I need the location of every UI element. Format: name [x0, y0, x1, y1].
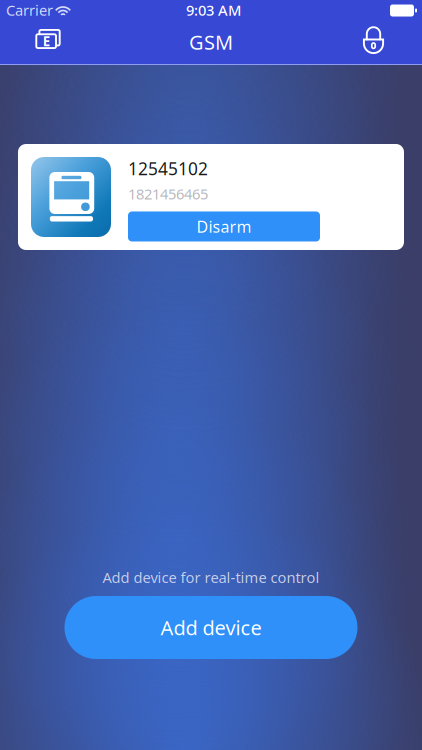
staticText: Add device for real-time control [102, 567, 319, 587]
staticText: Carrier [6, 0, 53, 20]
staticText: Add device [160, 614, 261, 641]
button[interactable]: Disarm [128, 211, 320, 241]
staticText: 1821456465 [128, 184, 208, 203]
staticText: 9:03 AM [186, 0, 241, 20]
staticText: 12545102 [128, 157, 208, 180]
staticText: GSM [189, 29, 233, 55]
button[interactable]: Devices [0, 20, 79, 64]
staticText: Disarm [196, 216, 251, 237]
staticText: E [43, 32, 50, 50]
button[interactable]: Lock [343, 20, 422, 64]
button[interactable]: Add device [64, 596, 357, 659]
